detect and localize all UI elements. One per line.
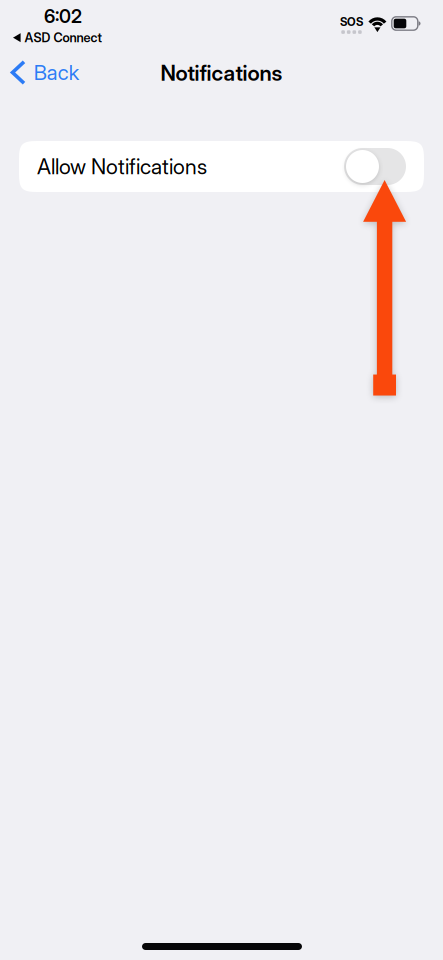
staticText: Notifications (160, 60, 282, 86)
staticText: 6:02 (44, 5, 82, 28)
button[interactable]: ASD Connect (13, 30, 102, 45)
staticText: ASD Connect (25, 30, 102, 45)
button[interactable]: Allow Notifications, off (344, 148, 406, 185)
staticText: Allow Notifications (37, 154, 207, 179)
staticText: Back (34, 60, 79, 85)
staticText: SOS (340, 15, 363, 29)
button[interactable]: Back (0, 52, 88, 93)
